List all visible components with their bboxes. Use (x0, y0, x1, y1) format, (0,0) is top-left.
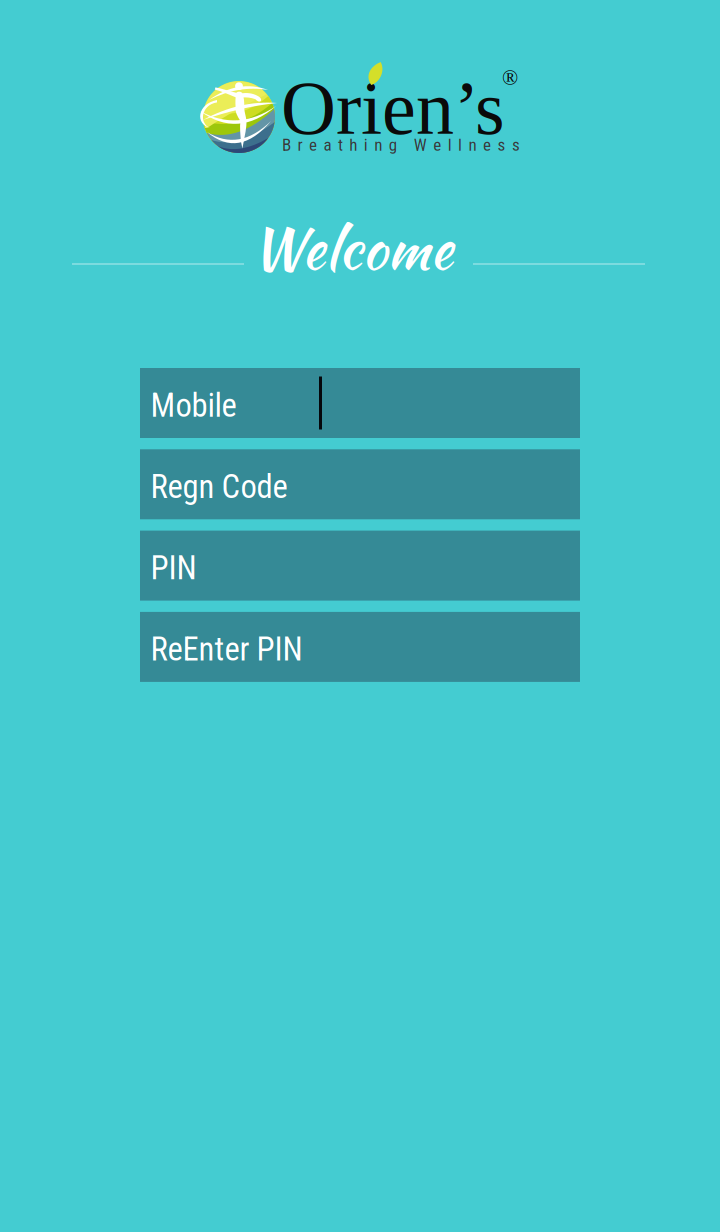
staticText: Breathing Wellness (282, 135, 520, 155)
button[interactable]: Mobile (140, 368, 580, 438)
staticText: Mobile (150, 386, 236, 425)
button[interactable]: ReEnter PIN (140, 612, 580, 682)
button[interactable]: PIN (140, 531, 580, 601)
staticText: PIN (150, 549, 196, 587)
staticText: Welcome (251, 208, 453, 289)
staticText: Orien’s (281, 66, 505, 150)
staticText: ® (502, 66, 518, 90)
button[interactable]: Regn Code (140, 449, 580, 519)
staticText: Regn Code (150, 468, 287, 506)
staticText: ReEnter PIN (150, 630, 302, 669)
